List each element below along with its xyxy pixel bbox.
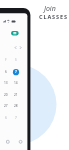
- staticText: S: [15, 58, 17, 62]
- staticText: 14: [14, 81, 18, 85]
- staticText: 27: [4, 104, 8, 108]
- button[interactable]: Join: [44, 4, 56, 14]
- staticText: Join: [44, 4, 56, 14]
- staticText: F: [5, 58, 7, 62]
- staticText: 6: [5, 70, 7, 74]
- staticText: 7: [15, 116, 17, 120]
- staticText: 28: [14, 104, 18, 108]
- staticText: 7: [15, 70, 17, 74]
- button[interactable]: CLASSES: [39, 13, 68, 20]
- staticText: 21: [14, 93, 18, 97]
- staticText: 13: [4, 81, 8, 85]
- staticText: 20: [4, 93, 8, 97]
- staticText: CLASSES: [39, 13, 68, 20]
- staticText: 6: [5, 116, 7, 120]
